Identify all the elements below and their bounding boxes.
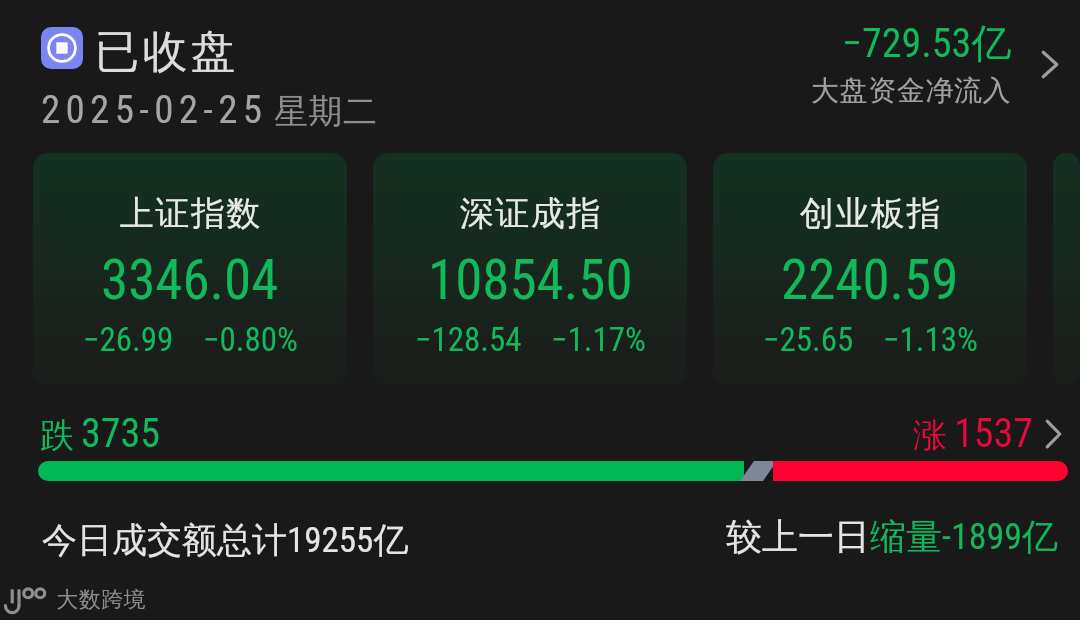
staticText: 创业板指: [799, 192, 941, 235]
staticText: 涨: [913, 414, 947, 457]
staticText: 已收盘: [93, 24, 237, 81]
staticText: 较上一日: [726, 514, 870, 559]
button[interactable]: 上证指数: [33, 153, 347, 385]
staticText: 缩量-1899亿: [870, 514, 1059, 559]
staticText: −25.65: [763, 320, 854, 359]
button[interactable]: 创业板指: [713, 153, 1027, 385]
staticText: −26.99: [83, 320, 174, 359]
staticText: 3735: [81, 410, 160, 457]
staticText: −0.80%: [203, 320, 298, 359]
staticText: −1.13%: [883, 320, 978, 359]
staticText: 3346.04: [101, 248, 279, 312]
staticText: 跌: [40, 414, 74, 457]
staticText: −1.17%: [551, 320, 646, 359]
staticText: −729.53亿: [842, 18, 1012, 68]
staticText: 深证成指: [459, 192, 601, 235]
button[interactable]: Capital flow details: [1040, 49, 1060, 80]
button[interactable]: Market status: [41, 27, 83, 69]
staticText: 2240.59: [781, 248, 959, 312]
button[interactable]: 深证成指: [373, 153, 687, 385]
staticText: 上证指数: [119, 192, 261, 235]
button[interactable]: Advance decline details: [1044, 418, 1063, 450]
staticText: −128.54: [415, 320, 522, 359]
staticText: 今日成交额总计19255亿: [42, 518, 409, 562]
staticText: 1537: [954, 410, 1033, 457]
staticText: 大盘资金净流入: [811, 73, 1012, 108]
staticText: 10854.50: [428, 248, 633, 312]
staticText: 星期二: [274, 90, 378, 133]
staticText: 2025-02-25: [41, 87, 268, 133]
staticText: 大数跨境: [56, 586, 146, 614]
button[interactable]: More indices: [1053, 153, 1080, 385]
